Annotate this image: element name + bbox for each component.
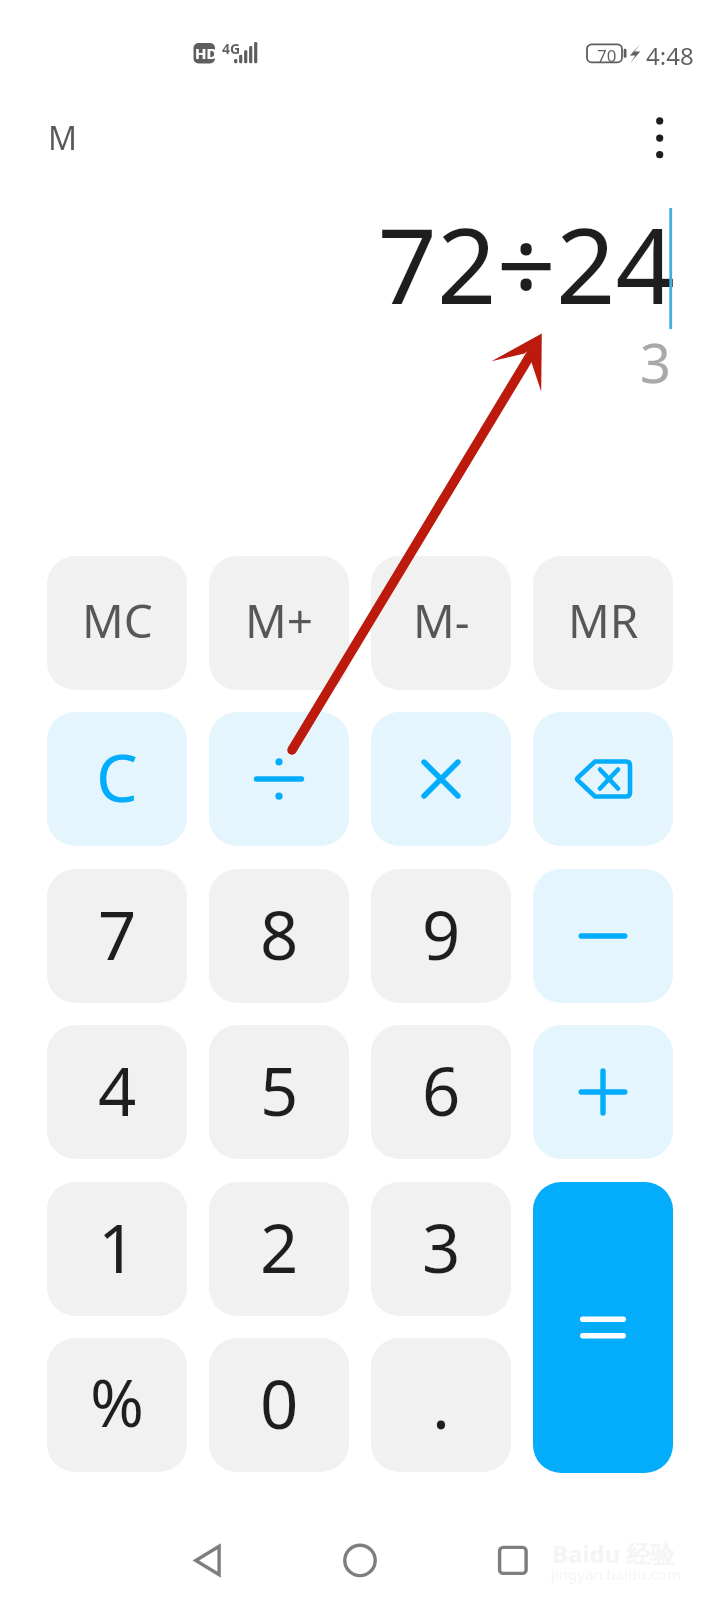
staticText: 0 xyxy=(260,1357,299,1448)
staticText: M- xyxy=(413,589,470,652)
button[interactable]: M xyxy=(20,104,106,172)
staticText: 1 xyxy=(98,1201,137,1292)
button[interactable]: 1 xyxy=(47,1182,187,1316)
button[interactable]: . xyxy=(371,1338,511,1472)
staticText: 3 xyxy=(0,325,671,399)
button[interactable]: MR xyxy=(533,556,673,690)
button[interactable]: 0 xyxy=(209,1338,349,1472)
staticText: 7 xyxy=(98,888,137,979)
staticText: 4 xyxy=(98,1044,137,1135)
button[interactable]: Home xyxy=(320,1520,400,1600)
button[interactable]: Plus xyxy=(533,1025,673,1159)
staticText: 5 xyxy=(260,1044,299,1135)
button[interactable]: 3 xyxy=(371,1182,511,1316)
staticText: % xyxy=(90,1358,145,1447)
staticText: 9 xyxy=(422,888,461,979)
button[interactable]: More options xyxy=(626,104,694,172)
button[interactable]: % xyxy=(47,1338,187,1472)
staticText: M xyxy=(48,116,78,160)
staticText: 4G xyxy=(222,39,241,58)
button[interactable]: Recents xyxy=(473,1520,553,1600)
button[interactable]: M+ xyxy=(209,556,349,690)
button[interactable]: 8 xyxy=(209,869,349,1003)
staticText: MR xyxy=(568,589,639,652)
button[interactable]: Backspace xyxy=(533,712,673,846)
button[interactable]: MC xyxy=(47,556,187,690)
staticText: 3 xyxy=(422,1201,461,1292)
button[interactable]: Minus xyxy=(533,869,673,1003)
staticText: 4:48 xyxy=(646,39,694,72)
staticText: HD xyxy=(195,43,218,63)
button[interactable]: 6 xyxy=(371,1025,511,1159)
staticText: 8 xyxy=(260,888,299,979)
staticText: . xyxy=(432,1357,450,1448)
button[interactable]: Divide xyxy=(209,712,349,846)
staticText: Baidu 经验 xyxy=(552,1537,675,1570)
staticText: M+ xyxy=(245,589,314,652)
staticText: 72÷24 xyxy=(0,193,675,335)
button[interactable]: M- xyxy=(371,556,511,690)
button[interactable]: Multiply xyxy=(371,712,511,846)
button[interactable]: C xyxy=(47,712,187,846)
button[interactable]: Back xyxy=(167,1520,247,1600)
button[interactable]: Equals xyxy=(533,1182,673,1473)
staticText: C xyxy=(96,731,138,821)
staticText: MC xyxy=(82,589,153,652)
button[interactable]: 7 xyxy=(47,869,187,1003)
button[interactable]: 5 xyxy=(209,1025,349,1159)
staticText: 6 xyxy=(422,1044,461,1135)
staticText: 70 xyxy=(597,44,617,67)
button[interactable]: 9 xyxy=(371,869,511,1003)
button[interactable]: 4 xyxy=(47,1025,187,1159)
button[interactable]: 2 xyxy=(209,1182,349,1316)
staticText: 2 xyxy=(260,1201,299,1292)
